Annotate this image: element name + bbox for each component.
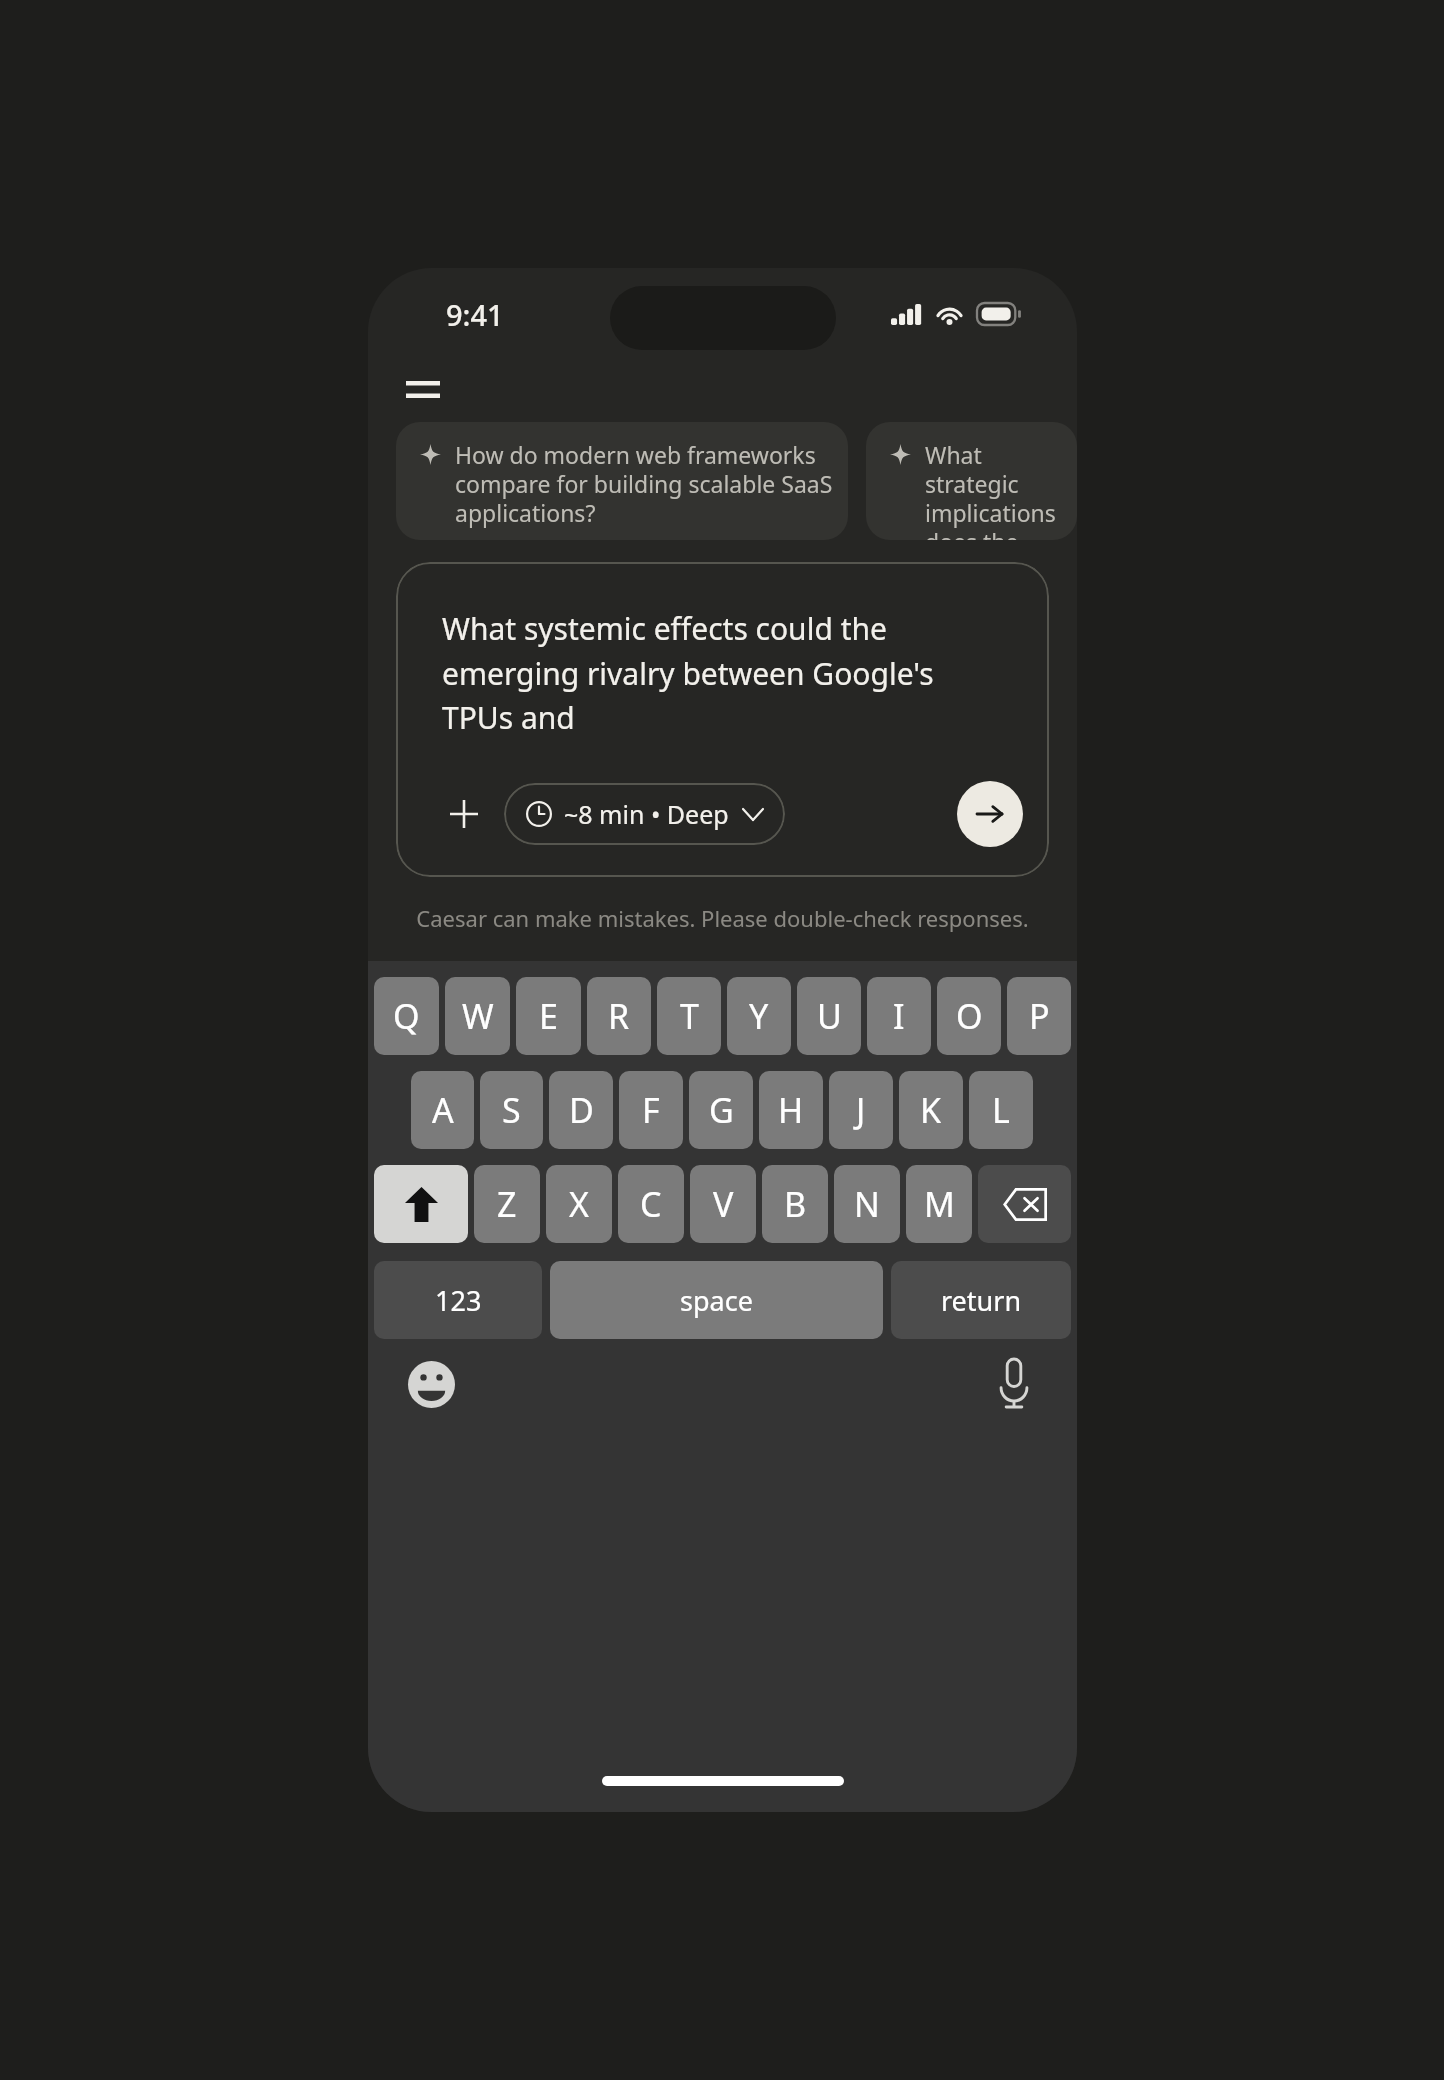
staticText: What strategic implications does the lar… (925, 439, 1063, 540)
button[interactable]: Send (957, 781, 1023, 847)
button[interactable]: G (689, 1071, 753, 1149)
staticText: G (709, 1087, 734, 1133)
staticText: H (778, 1087, 804, 1133)
staticText: L (992, 1087, 1010, 1133)
staticText: return (941, 1282, 1022, 1319)
staticText: How do modern web frameworks compare for… (455, 439, 834, 529)
button[interactable]: Emoji (402, 1355, 460, 1413)
button[interactable]: What systemic effects could the emerging… (396, 562, 1049, 877)
button[interactable]: E (516, 977, 581, 1055)
staticText: Y (749, 993, 769, 1039)
staticText: E (539, 993, 558, 1039)
button[interactable]: Shift (374, 1165, 468, 1243)
staticText: F (642, 1087, 660, 1133)
staticText: ~8 min • Deep (564, 797, 729, 831)
button[interactable]: Voice input (985, 1355, 1043, 1413)
button[interactable]: Backspace (978, 1165, 1071, 1243)
button[interactable]: I (867, 977, 931, 1055)
button[interactable]: H (759, 1071, 823, 1149)
button[interactable]: T (657, 977, 721, 1055)
staticText: Q (393, 993, 420, 1039)
staticText: M (924, 1181, 955, 1227)
staticText: W (462, 993, 494, 1039)
button[interactable]: return (891, 1261, 1071, 1339)
button[interactable]: N (834, 1165, 900, 1243)
staticText: O (956, 993, 983, 1039)
button[interactable]: W (445, 977, 510, 1055)
staticText: K (920, 1087, 942, 1133)
staticText: D (569, 1087, 594, 1133)
button[interactable]: Y (727, 977, 791, 1055)
button[interactable]: U (797, 977, 861, 1055)
staticText: V (713, 1181, 734, 1227)
button[interactable]: Menu (394, 360, 452, 418)
button[interactable]: R (587, 977, 651, 1055)
button[interactable]: S (480, 1071, 543, 1149)
button[interactable]: What strategic implications does the lar… (866, 422, 1077, 540)
staticText: T (680, 993, 699, 1039)
button[interactable]: ~8 min • Deep (504, 783, 785, 845)
staticText: X (569, 1181, 589, 1227)
button[interactable]: K (899, 1071, 963, 1149)
staticText: P (1029, 993, 1050, 1039)
staticText: U (817, 993, 842, 1039)
staticText: N (854, 1181, 880, 1227)
button[interactable]: C (618, 1165, 684, 1243)
button[interactable]: B (762, 1165, 828, 1243)
staticText: 9:41 (446, 295, 504, 334)
button[interactable]: Z (474, 1165, 540, 1243)
button[interactable]: O (937, 977, 1001, 1055)
button[interactable]: P (1007, 977, 1071, 1055)
button[interactable]: X (546, 1165, 612, 1243)
button[interactable]: Add attachment (442, 792, 486, 836)
button[interactable]: M (906, 1165, 972, 1243)
staticText: space (680, 1282, 753, 1319)
staticText: 123 (435, 1282, 482, 1319)
staticText: A (432, 1087, 454, 1133)
button[interactable]: D (549, 1071, 613, 1149)
staticText: C (640, 1181, 662, 1227)
button[interactable]: L (969, 1071, 1033, 1149)
button[interactable]: 123 (374, 1261, 542, 1339)
staticText: J (856, 1087, 866, 1133)
staticText: S (502, 1087, 521, 1133)
staticText: B (784, 1181, 807, 1227)
staticText: Z (497, 1181, 517, 1227)
staticText: Caesar can make mistakes. Please double-… (368, 903, 1077, 933)
button[interactable]: A (411, 1071, 474, 1149)
button[interactable]: V (690, 1165, 756, 1243)
button[interactable]: J (829, 1071, 893, 1149)
button[interactable]: Q (374, 977, 439, 1055)
staticText: What systemic effects could the emerging… (442, 608, 982, 737)
staticText: R (608, 993, 630, 1039)
button[interactable]: F (619, 1071, 683, 1149)
staticText: I (893, 993, 905, 1039)
button[interactable]: space (550, 1261, 883, 1339)
button[interactable]: How do modern web frameworks compare for… (396, 422, 848, 540)
